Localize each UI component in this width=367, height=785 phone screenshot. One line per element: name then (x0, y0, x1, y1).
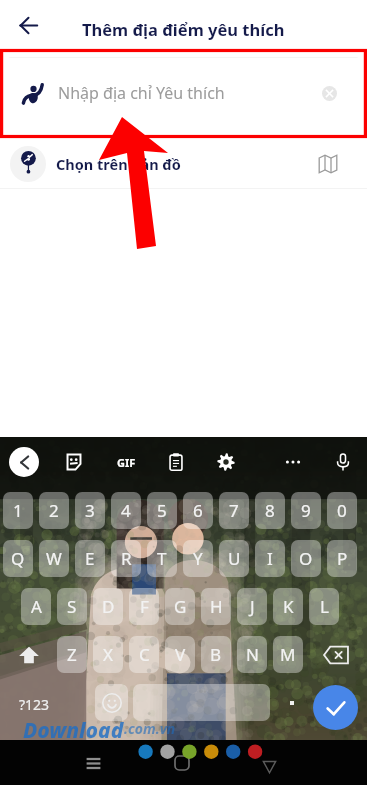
button[interactable]: More options (277, 446, 309, 478)
button[interactable]: Clear text (317, 81, 341, 105)
button[interactable]: V (165, 636, 195, 673)
button[interactable]: S (57, 588, 87, 625)
button[interactable]: Z (57, 636, 87, 673)
staticText: ?123 (19, 695, 50, 714)
button[interactable]: 5 (147, 492, 177, 529)
staticText: 2 (49, 499, 59, 522)
button[interactable]: Shift (11, 639, 47, 671)
staticText: 7 (229, 499, 239, 522)
button[interactable]: Keyboard settings (210, 446, 242, 478)
button[interactable]: GIF (110, 446, 142, 478)
staticText: I (267, 547, 273, 570)
button[interactable]: R (111, 540, 141, 577)
button[interactable]: 6 (183, 492, 213, 529)
staticText: S (67, 595, 77, 618)
staticText: W (46, 547, 62, 570)
staticText: 0 (337, 499, 347, 522)
button[interactable]: B (201, 636, 231, 673)
button[interactable]: 3 (75, 492, 105, 529)
staticText: N (246, 643, 259, 666)
button[interactable]: K (273, 588, 303, 625)
button[interactable]: C (129, 636, 159, 673)
button[interactable]: Collapse toolbar (9, 447, 39, 477)
button[interactable]: 4 (111, 492, 141, 529)
staticText: R (121, 547, 132, 570)
staticText: Download (23, 716, 124, 740)
staticText: O (299, 547, 313, 570)
staticText: J (250, 595, 255, 618)
button[interactable]: Nhập địa chỉ Yêu thích (8, 57, 359, 129)
button[interactable]: 9 (291, 492, 321, 529)
button[interactable]: Open map (313, 149, 343, 179)
button[interactable]: Emoji (95, 684, 128, 721)
button[interactable]: Recent apps (80, 750, 106, 776)
staticText: 4 (121, 499, 131, 522)
staticText: B (210, 643, 222, 666)
staticText: L (320, 595, 329, 618)
staticText: 9 (301, 499, 311, 522)
button[interactable]: P (327, 540, 357, 577)
button[interactable]: Chọn trên bản đồ (0, 138, 367, 189)
button[interactable]: X (93, 636, 123, 673)
button[interactable]: 8 (255, 492, 285, 529)
button[interactable]: Back (11, 8, 45, 42)
button[interactable]: Home (169, 750, 195, 776)
staticText: F (140, 595, 149, 618)
button[interactable]: O (291, 540, 321, 577)
button[interactable]: M (273, 636, 303, 673)
staticText: G (174, 595, 187, 618)
button[interactable]: 7 (219, 492, 249, 529)
button[interactable]: 2 (39, 492, 69, 529)
button[interactable]: D (93, 588, 123, 625)
staticText: Thêm địa điểm yêu thích (82, 18, 285, 40)
staticText: GIF (117, 455, 136, 470)
staticText: 3 (85, 499, 95, 522)
staticText: U (228, 547, 241, 570)
staticText: 8 (265, 499, 275, 522)
staticText: Nhập địa chỉ Yêu thích (58, 82, 225, 104)
button[interactable]: 0 (327, 492, 357, 529)
button[interactable]: N (237, 636, 267, 673)
staticText: Y (193, 547, 203, 570)
staticText: D (102, 595, 115, 618)
staticText: .com.vn (124, 719, 176, 738)
button[interactable]: ?123 (8, 688, 60, 720)
staticText: 6 (193, 499, 203, 522)
button[interactable]: Back (256, 753, 282, 779)
staticText: A (31, 595, 42, 618)
staticText: H (210, 595, 223, 618)
button[interactable]: F (129, 588, 159, 625)
button[interactable]: I (255, 540, 285, 577)
staticText: E (85, 547, 95, 570)
button[interactable]: A (21, 588, 51, 625)
button[interactable]: U (219, 540, 249, 577)
staticText: V (175, 643, 186, 666)
button[interactable]: G (165, 588, 195, 625)
staticText: P (337, 547, 348, 570)
staticText: 5 (157, 499, 167, 522)
staticText: Q (11, 547, 25, 570)
staticText: Chọn trên bản đồ (56, 154, 181, 174)
button[interactable]: E (75, 540, 105, 577)
button[interactable]: Backspace (315, 639, 357, 671)
button[interactable]: T (147, 540, 177, 577)
staticText: Z (67, 643, 77, 666)
button[interactable]: Stickers (58, 446, 90, 478)
button[interactable]: Voice input (327, 446, 359, 478)
button[interactable]: W (39, 540, 69, 577)
staticText: 1 (13, 499, 23, 522)
staticText: T (157, 547, 167, 570)
button[interactable]: Period (276, 684, 308, 721)
button[interactable]: Clipboard (160, 446, 192, 478)
button[interactable]: H (201, 588, 231, 625)
button[interactable]: Y (183, 540, 213, 577)
button[interactable]: L (309, 588, 339, 625)
button[interactable]: J (237, 588, 267, 625)
button[interactable]: 1 (3, 492, 33, 529)
staticText: K (283, 595, 294, 618)
staticText: X (103, 643, 113, 666)
button[interactable]: Confirm (313, 685, 358, 730)
button[interactable]: Q (3, 540, 33, 577)
button[interactable]: Space (133, 684, 270, 721)
staticText: M (280, 643, 296, 666)
